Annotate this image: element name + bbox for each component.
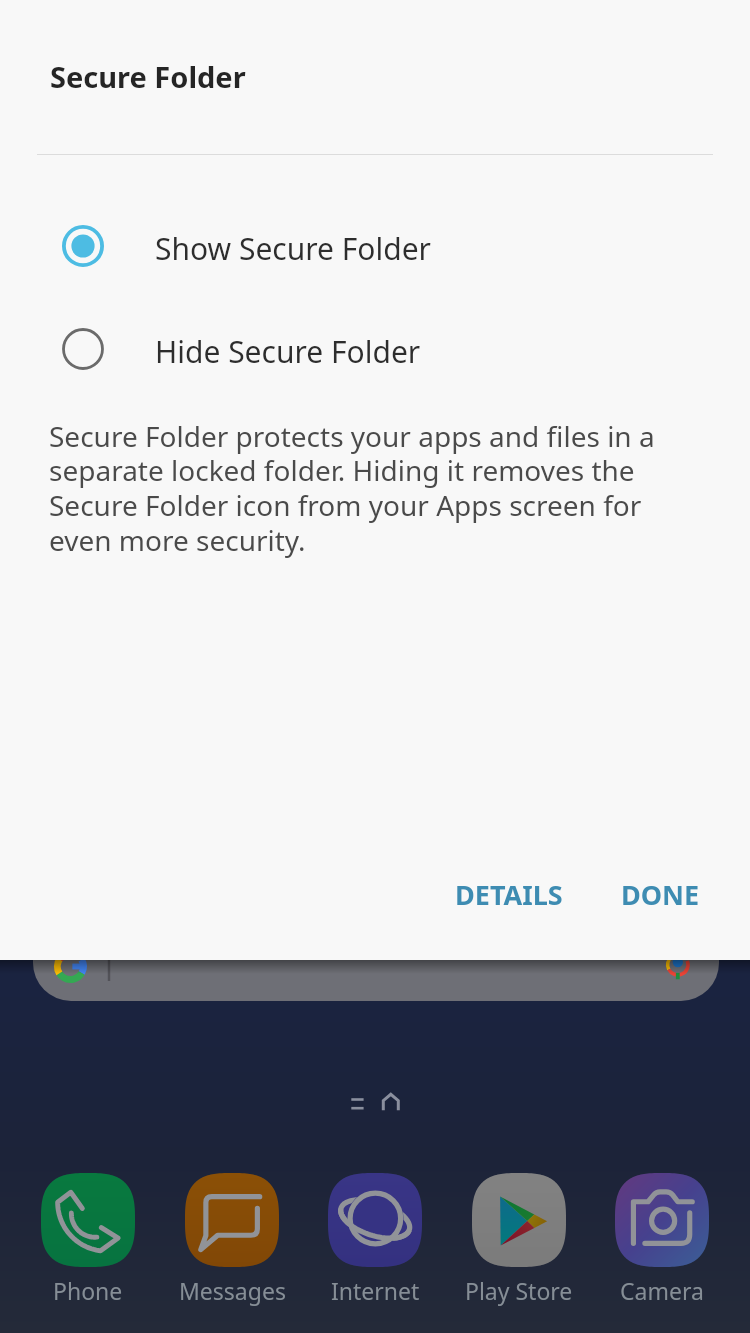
button[interactable]: Hide Secure Folder: [0, 307, 750, 390]
staticText: DETAILS: [455, 876, 563, 913]
staticText: Secure Folder protects your apps and fil…: [49, 417, 671, 559]
staticText: Hide Secure Folder: [155, 331, 421, 372]
button[interactable]: Play Store: [444, 1173, 594, 1306]
staticText: DONE: [621, 876, 700, 913]
button[interactable]: Internet: [300, 1173, 450, 1306]
button[interactable]: Camera: [587, 1173, 737, 1306]
staticText: Play Store: [465, 1275, 573, 1306]
button[interactable]: Google search: [33, 917, 719, 1001]
staticText: Show Secure Folder: [155, 228, 431, 269]
button[interactable]: DONE: [603, 860, 718, 929]
button[interactable]: DETAILS: [437, 860, 581, 929]
button[interactable]: Messages: [157, 1173, 307, 1306]
staticText: Secure Folder: [50, 57, 246, 96]
staticText: Camera: [620, 1275, 704, 1306]
button[interactable]: Show Secure Folder: [0, 204, 750, 287]
staticText: Messages: [179, 1275, 286, 1306]
staticText: Phone: [53, 1275, 123, 1306]
button[interactable]: Phone: [13, 1173, 163, 1306]
staticText: Internet: [331, 1275, 420, 1306]
